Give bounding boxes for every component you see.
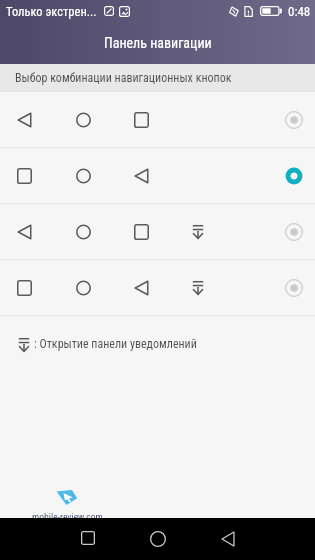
button[interactable] (0, 204, 315, 260)
staticText: Только экстрен... (6, 4, 97, 19)
button[interactable]: Back (221, 531, 235, 547)
staticText: 0:48 (288, 4, 311, 19)
staticText: mobile-review.com (32, 511, 103, 518)
button[interactable] (0, 92, 315, 148)
staticText: : Открытие панели уведомлений (34, 337, 197, 351)
button[interactable] (0, 148, 315, 204)
button[interactable] (0, 260, 315, 316)
staticText: Панель навигации (104, 35, 212, 51)
button[interactable]: Home (150, 531, 166, 547)
button[interactable]: Recent apps (81, 531, 95, 545)
staticText: Выбор комбинации навигационных кнопок (15, 71, 232, 85)
